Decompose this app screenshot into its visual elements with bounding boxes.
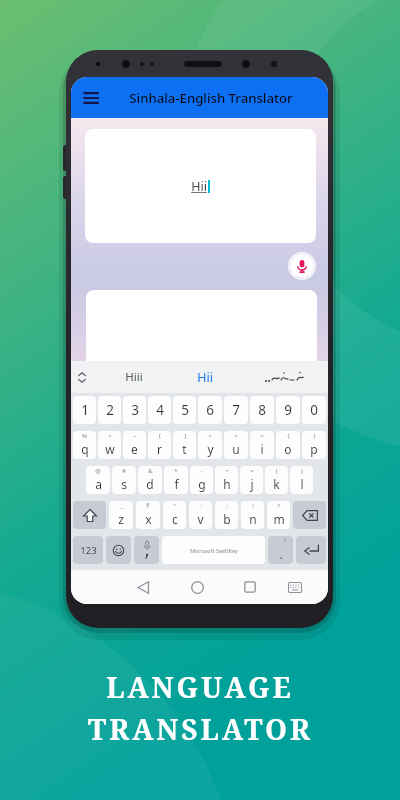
staticText: LANGUAGE xyxy=(106,668,294,706)
button[interactable]: # xyxy=(112,466,136,494)
button[interactable]: < xyxy=(198,431,222,459)
button[interactable]: 123 xyxy=(73,536,103,564)
staticText: 123 xyxy=(80,544,97,557)
button[interactable]: } xyxy=(302,431,326,459)
button[interactable]: 6 xyxy=(198,396,222,424)
staticText: } xyxy=(313,432,316,440)
button[interactable] xyxy=(134,536,159,564)
staticText: [ xyxy=(159,432,161,440)
staticText: j xyxy=(250,476,254,492)
staticText: h xyxy=(223,476,231,492)
staticText: 0 xyxy=(310,401,318,419)
staticText: = xyxy=(250,467,254,475)
button[interactable]: 2 xyxy=(98,396,121,424)
staticText: z xyxy=(118,511,124,527)
button[interactable]: 8 xyxy=(250,396,274,424)
button[interactable]: ; xyxy=(215,501,238,529)
button[interactable]: Microsoft SwiftKey xyxy=(162,536,265,564)
button[interactable] xyxy=(288,252,316,280)
staticText: y xyxy=(207,441,214,457)
button[interactable]: 5 xyxy=(173,396,196,424)
button[interactable]: ₹ xyxy=(136,501,160,529)
button[interactable]: 7 xyxy=(224,396,248,424)
staticText: ) xyxy=(301,467,303,475)
staticText: i xyxy=(260,441,264,457)
button[interactable] xyxy=(288,582,302,593)
button[interactable]: - xyxy=(190,466,213,494)
button[interactable] xyxy=(83,92,100,104)
staticText: TRANSLATOR xyxy=(88,710,313,748)
staticText: 8 xyxy=(258,401,266,419)
staticText: { xyxy=(287,432,290,440)
button[interactable]: + xyxy=(215,466,238,494)
button[interactable]: @ xyxy=(86,466,110,494)
staticText: * xyxy=(174,467,178,475)
button[interactable]: & xyxy=(138,466,162,494)
button[interactable]: " xyxy=(163,501,186,529)
button[interactable]: ) xyxy=(290,466,313,494)
staticText: 3 xyxy=(131,401,139,419)
button[interactable]: Hii xyxy=(197,369,213,386)
button[interactable]: = xyxy=(240,466,263,494)
staticText: : xyxy=(200,502,202,510)
button[interactable]: 9 xyxy=(276,396,300,424)
button[interactable]: 1 xyxy=(73,396,96,424)
staticText: a xyxy=(95,476,102,492)
staticText: Microsoft SwiftKey xyxy=(190,547,238,554)
button[interactable]: ~ xyxy=(123,431,146,459)
staticText: - xyxy=(201,467,203,475)
staticText: s xyxy=(121,476,127,492)
button[interactable]: ( xyxy=(265,466,288,494)
staticText: _ xyxy=(120,502,123,510)
button[interactable]: ? xyxy=(267,501,290,529)
button[interactable]: > xyxy=(224,431,248,459)
button[interactable]: 3 xyxy=(123,396,146,424)
button[interactable]: Hiii xyxy=(125,369,143,385)
button[interactable] xyxy=(244,581,256,593)
staticText: ? xyxy=(283,537,286,545)
button[interactable]: _ xyxy=(109,501,133,529)
staticText: ( xyxy=(276,467,278,475)
button[interactable] xyxy=(296,536,326,564)
staticText: b xyxy=(223,511,231,527)
staticText: k xyxy=(273,476,280,492)
staticText: w xyxy=(105,441,115,457)
staticText: c xyxy=(172,511,178,527)
staticText: 2 xyxy=(106,401,114,419)
staticText: ? xyxy=(277,502,280,510)
staticText: 9 xyxy=(284,401,292,419)
button[interactable] xyxy=(73,501,106,529)
staticText: . xyxy=(279,546,283,562)
button[interactable]: 4 xyxy=(148,396,171,424)
staticText: f xyxy=(174,476,179,492)
staticText: r xyxy=(157,441,162,457)
button[interactable] xyxy=(86,290,317,375)
staticText: + xyxy=(225,467,229,475)
button[interactable] xyxy=(264,371,304,383)
button[interactable] xyxy=(106,536,131,564)
button[interactable]: 0 xyxy=(302,396,326,424)
button[interactable]: ] xyxy=(173,431,196,459)
staticText: o xyxy=(284,441,292,457)
button[interactable]: ? xyxy=(268,536,293,564)
staticText: " xyxy=(173,502,176,510)
button[interactable] xyxy=(293,501,326,529)
staticText: & xyxy=(148,467,153,475)
button[interactable]: : xyxy=(189,501,212,529)
button[interactable] xyxy=(191,581,204,594)
button[interactable]: Hii xyxy=(85,129,316,243)
staticText: ₹ xyxy=(146,502,150,510)
staticText: t xyxy=(182,441,187,457)
button[interactable]: * xyxy=(164,466,188,494)
button[interactable]: % xyxy=(73,431,96,459)
button[interactable]: [ xyxy=(148,431,171,459)
button[interactable]: ^ xyxy=(98,431,121,459)
button[interactable]: { xyxy=(276,431,300,459)
staticText: 5 xyxy=(181,401,189,419)
staticText: > xyxy=(234,432,238,440)
staticText: p xyxy=(310,441,318,457)
staticText: u xyxy=(232,441,240,457)
button[interactable]: ! xyxy=(241,501,264,529)
button[interactable]: = xyxy=(250,431,274,459)
button[interactable] xyxy=(137,581,150,594)
